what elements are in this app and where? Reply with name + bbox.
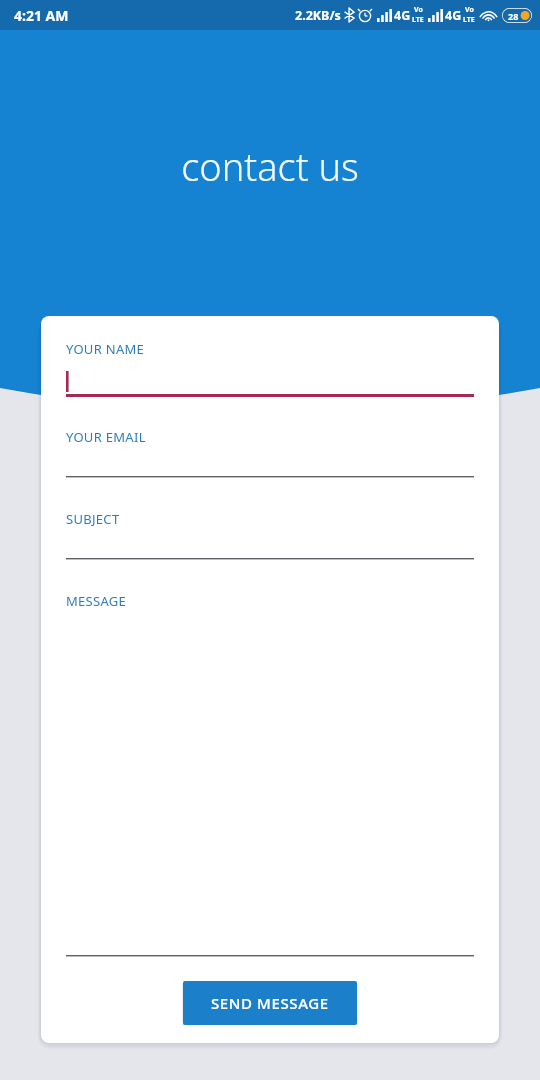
staticText: SEND MESSAGE: [211, 993, 329, 1013]
button[interactable]: SEND MESSAGE: [183, 981, 357, 1025]
button[interactable]: [66, 611, 474, 957]
staticText: Vo: [465, 5, 474, 15]
staticText: contact us: [181, 140, 359, 192]
staticText: MESSAGE: [66, 592, 127, 610]
staticText: SUBJECT: [66, 510, 120, 528]
staticText: 4G: [394, 7, 411, 24]
staticText: LTE: [463, 15, 475, 25]
button[interactable]: [66, 476, 474, 478]
staticText: YOUR NAME: [66, 340, 145, 358]
staticText: Vo: [414, 5, 423, 15]
staticText: 28: [508, 10, 519, 22]
button[interactable]: [66, 955, 474, 957]
staticText: YOUR EMAIL: [66, 428, 146, 446]
button[interactable]: [66, 371, 474, 397]
staticText: 2.2KB/s: [295, 7, 341, 24]
button[interactable]: [66, 558, 474, 560]
staticText: 4:21 AM: [14, 6, 69, 25]
staticText: 4G: [445, 7, 462, 24]
staticText: LTE: [412, 15, 424, 25]
